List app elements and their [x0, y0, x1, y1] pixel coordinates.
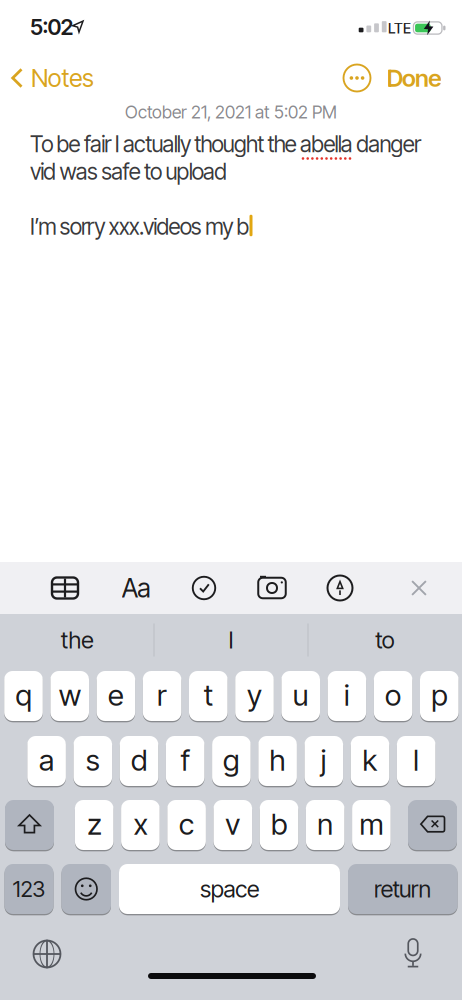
button[interactable]: Camera [257, 576, 287, 600]
button[interactable]: Numbers [4, 863, 53, 915]
button[interactable]: d [120, 735, 158, 787]
staticText: s [86, 742, 100, 778]
button[interactable]: e [97, 670, 135, 722]
staticText: z [87, 806, 101, 842]
staticText: k [362, 742, 377, 778]
staticText: return [374, 875, 431, 903]
button[interactable]: Insert table [50, 575, 80, 601]
button[interactable]: Text format [118, 573, 154, 603]
button[interactable]: Notes [11, 60, 94, 96]
button[interactable]: n [306, 799, 344, 851]
button[interactable]: g [212, 735, 251, 787]
staticText: vid was safe to upload [30, 158, 227, 185]
staticText: Aa [122, 572, 150, 604]
staticText: x [133, 806, 147, 842]
button[interactable]: More [341, 62, 372, 93]
button[interactable]: l [397, 735, 435, 787]
staticText: q [15, 677, 31, 713]
staticText: t [204, 677, 213, 713]
staticText: f [181, 742, 190, 778]
button[interactable]: Emoji [61, 863, 111, 915]
staticText: I [228, 626, 233, 654]
button[interactable]: s [73, 735, 112, 787]
staticText: i [344, 677, 350, 713]
button[interactable]: f [166, 735, 204, 787]
button[interactable]: r [143, 670, 181, 722]
staticText: LTE [388, 20, 411, 37]
button[interactable]: to [312, 618, 457, 662]
staticText: b [271, 806, 287, 842]
button[interactable]: t [189, 670, 228, 722]
staticText: r [157, 677, 167, 713]
button[interactable]: Next keyboard [32, 939, 61, 968]
button[interactable]: Markup [326, 574, 353, 601]
button[interactable]: o [374, 670, 412, 722]
button[interactable]: q [4, 670, 43, 722]
staticText: v [225, 806, 240, 842]
staticText: m [359, 806, 383, 842]
staticText: o [385, 677, 401, 713]
button[interactable]: b [260, 799, 298, 851]
staticText: to [375, 626, 395, 654]
button[interactable]: h [258, 735, 297, 787]
staticText: h [270, 742, 286, 778]
button[interactable]: m [352, 799, 391, 851]
staticText: the [61, 626, 93, 654]
button[interactable]: z [75, 799, 113, 851]
button[interactable]: x [121, 799, 160, 851]
button[interactable]: j [304, 735, 343, 787]
staticText: l [413, 742, 419, 778]
button[interactable]: a [27, 735, 66, 787]
button[interactable]: v [213, 799, 252, 851]
staticText: a [39, 742, 54, 778]
staticText: c [179, 806, 194, 842]
button[interactable]: u [281, 670, 320, 722]
staticText: Notes [31, 63, 94, 93]
button[interactable]: i [328, 670, 366, 722]
staticText: u [293, 677, 309, 713]
button[interactable]: Checklist [191, 575, 217, 601]
button[interactable]: y [235, 670, 274, 722]
staticText: d [131, 742, 147, 778]
button[interactable]: return [348, 863, 457, 915]
button[interactable]: Dismiss toolbar [411, 580, 427, 596]
button[interactable]: Shift [5, 799, 54, 851]
button[interactable]: I [158, 618, 303, 662]
staticText: 5:02 [30, 14, 74, 40]
staticText: y [247, 677, 262, 713]
staticText: n [317, 806, 333, 842]
button[interactable]: w [50, 670, 89, 722]
button[interactable]: Delete [408, 799, 457, 851]
staticText: p [431, 677, 447, 713]
button[interactable]: Dictate [403, 938, 423, 967]
staticText: space [200, 875, 259, 903]
staticText: w [59, 677, 81, 713]
staticText: I’m sorry xxx.videos my b [30, 213, 250, 240]
staticText: j [321, 742, 327, 778]
staticText: e [108, 677, 124, 713]
button[interactable]: Done [387, 60, 441, 96]
staticText: g [223, 742, 240, 778]
button[interactable]: k [351, 735, 389, 787]
staticText: To be fair I actually thought the abella… [30, 130, 421, 157]
button[interactable]: c [167, 799, 206, 851]
button[interactable]: space [119, 863, 340, 915]
staticText: October 21, 2021 at 5:02 PM [125, 101, 337, 123]
staticText: 123 [13, 876, 45, 902]
button[interactable]: p [420, 670, 459, 722]
staticText: Done [387, 63, 441, 92]
button[interactable]: the [4, 618, 149, 662]
